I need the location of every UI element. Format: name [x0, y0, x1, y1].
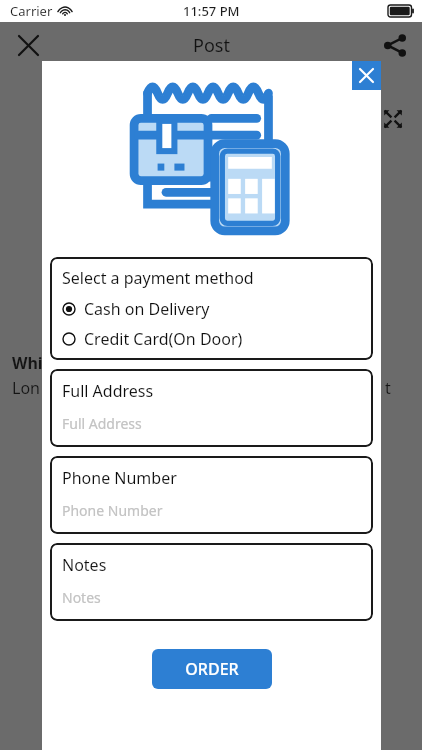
staticText: 11:57 PM	[183, 2, 240, 20]
button[interactable]: Share	[374, 24, 416, 66]
staticText: Full Address	[62, 414, 142, 433]
staticText: Whi	[12, 352, 43, 374]
staticText: Full Address	[62, 380, 154, 402]
button[interactable]: Expand	[376, 102, 410, 136]
staticText: Lon	[12, 377, 40, 399]
staticText: Phone Number	[62, 501, 163, 520]
button[interactable]: Cash on Delivery	[62, 298, 363, 320]
staticText: Credit Card(On Door)	[84, 328, 243, 350]
staticText: Select a payment method	[62, 267, 254, 289]
button[interactable]: ORDER	[152, 649, 272, 689]
staticText: ORDER	[185, 658, 239, 680]
staticText: t	[385, 377, 391, 399]
staticText: Cash on Delivery	[84, 298, 210, 320]
button[interactable]: Close dialog	[352, 61, 381, 90]
staticText: Post	[193, 33, 230, 58]
staticText: Notes	[62, 554, 107, 576]
staticText: Phone Number	[62, 467, 177, 489]
button[interactable]: Full Address	[50, 369, 373, 447]
button[interactable]: Close	[8, 25, 48, 65]
button[interactable]: Notes	[50, 543, 373, 621]
staticText: Carrier	[10, 2, 53, 20]
button[interactable]: Credit Card(On Door)	[62, 328, 363, 350]
button[interactable]: Phone Number	[50, 456, 373, 534]
staticText: Notes	[62, 588, 101, 607]
